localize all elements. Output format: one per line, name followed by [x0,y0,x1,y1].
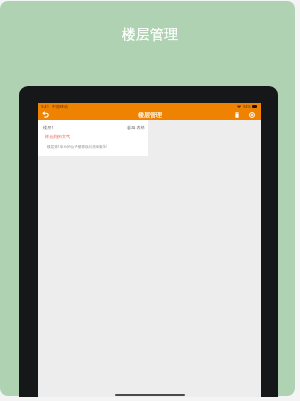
button[interactable]: 主屏幕 [115,394,185,396]
staticText: 9:41 [41,104,49,109]
staticText: 中国移动 [52,104,68,109]
staticText: 祥云间的大气 [45,134,71,139]
button[interactable]: 删除 [231,109,242,120]
staticText: 标题 表格 [127,125,145,131]
staticText: 楼层管理 [138,111,162,119]
button[interactable]: 楼层1 [38,120,148,156]
button[interactable]: 添加 [246,109,257,120]
staticText: 楼层第1单元的位子楼面设品质单数划 [47,144,107,149]
staticText: 94% [243,104,251,109]
staticText: 楼层管理 [122,26,178,44]
staticText: 楼层1 [43,125,54,131]
button[interactable]: 返回 [39,109,52,120]
